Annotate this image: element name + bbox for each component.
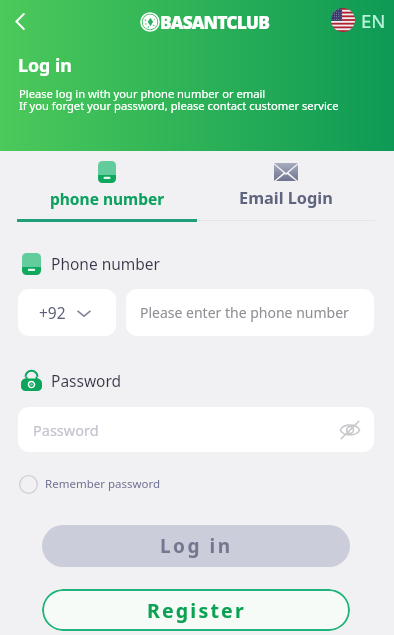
staticText: If you forget your password, please cont…	[19, 98, 339, 113]
staticText: Password	[51, 370, 122, 391]
button[interactable]: Register	[42, 589, 350, 631]
staticText: Email Login	[239, 187, 333, 209]
button[interactable]: Email Login	[197, 152, 375, 220]
staticText: Register	[147, 597, 246, 624]
staticText: Remember password	[45, 476, 161, 492]
staticText: Log in	[18, 53, 72, 77]
button[interactable]: Please enter the phone number	[126, 289, 374, 336]
staticText: BASANTCLUB	[160, 10, 270, 34]
button[interactable]: EN	[360, 7, 386, 33]
button[interactable]: Remember password	[19, 473, 161, 495]
button[interactable]: Show password	[336, 416, 364, 444]
staticText: Please enter the phone number	[140, 303, 349, 322]
button[interactable]: Back	[3, 4, 37, 38]
staticText: Phone number	[51, 253, 161, 274]
staticText: Log in	[160, 533, 233, 559]
staticText: Password	[33, 420, 99, 440]
button[interactable]: phone number	[17, 152, 197, 220]
button[interactable]: Password	[18, 407, 374, 452]
button[interactable]: Log in	[42, 525, 350, 567]
button[interactable]: +92	[18, 289, 116, 336]
staticText: EN	[361, 8, 386, 33]
staticText: Please log in with your phone number or …	[19, 86, 266, 101]
staticText: phone number	[50, 188, 165, 209]
button[interactable]: Language	[331, 8, 355, 32]
staticText: +92	[39, 302, 66, 323]
